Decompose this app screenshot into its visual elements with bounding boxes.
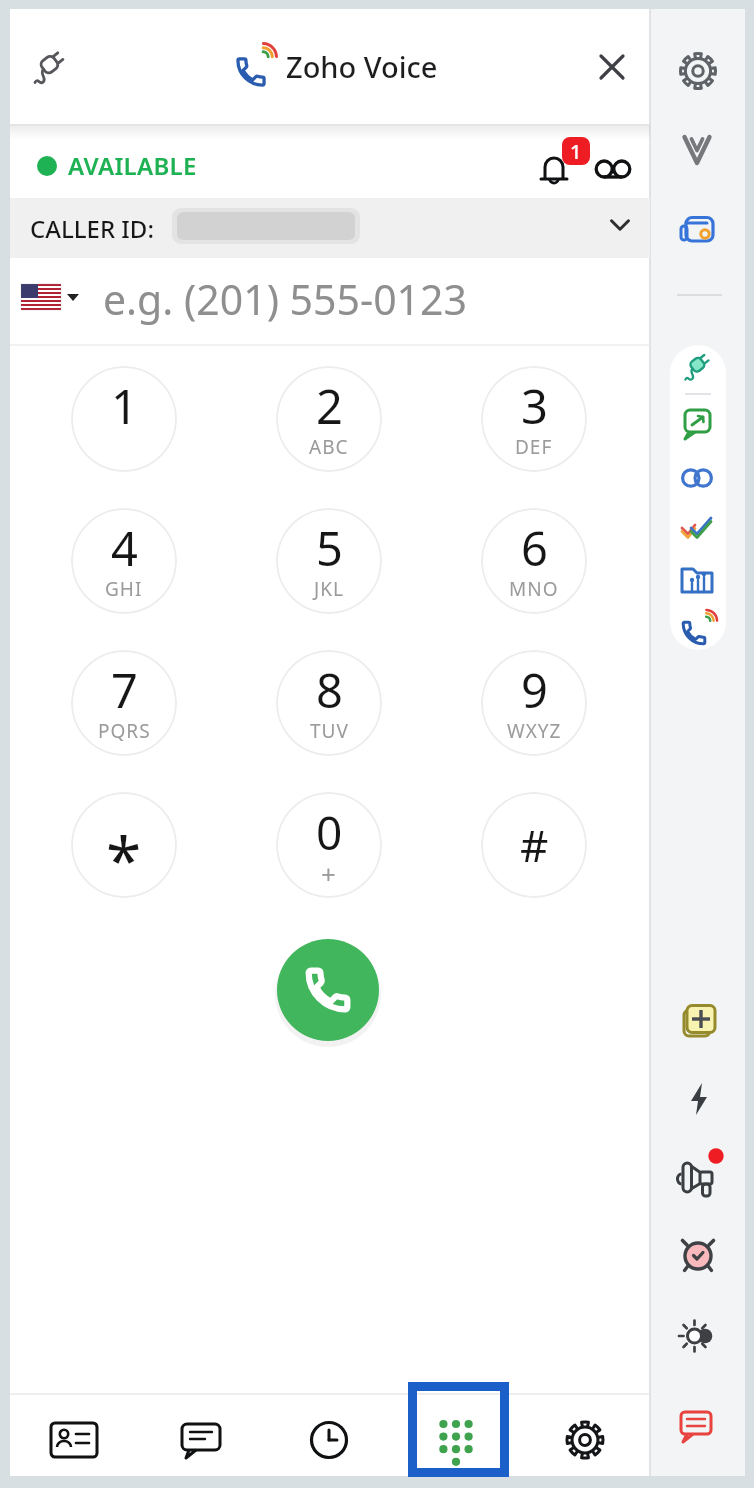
button[interactable] bbox=[10, 198, 650, 258]
button[interactable] bbox=[529, 145, 579, 195]
button[interactable]: 9 bbox=[481, 650, 587, 756]
button[interactable] bbox=[15, 270, 101, 326]
button[interactable]: 0 bbox=[276, 792, 382, 898]
button[interactable]: 3 bbox=[481, 366, 587, 472]
button[interactable] bbox=[677, 995, 725, 1043]
button[interactable] bbox=[675, 1075, 723, 1123]
staticText: 1 bbox=[570, 138, 582, 165]
staticText: 5 bbox=[316, 516, 343, 580]
button[interactable] bbox=[673, 557, 721, 605]
button[interactable] bbox=[588, 144, 638, 194]
button[interactable]: 1 bbox=[71, 366, 177, 472]
button[interactable] bbox=[674, 205, 722, 253]
staticText: GHI bbox=[105, 576, 143, 602]
button[interactable] bbox=[674, 1153, 722, 1201]
staticText: 1 bbox=[111, 374, 138, 438]
staticText: CALLER ID: bbox=[30, 212, 154, 245]
button[interactable] bbox=[672, 1401, 720, 1449]
button[interactable]: 2 bbox=[276, 366, 382, 472]
staticText: 9 bbox=[521, 658, 548, 722]
button[interactable]: 5 bbox=[276, 508, 382, 614]
staticText: 8 bbox=[316, 658, 343, 722]
staticText: e.g. (201) 555-0123 bbox=[103, 271, 467, 327]
button[interactable]: 4 bbox=[71, 508, 177, 614]
button[interactable] bbox=[550, 1405, 620, 1475]
button[interactable] bbox=[408, 1382, 509, 1477]
button[interactable] bbox=[39, 1405, 109, 1475]
staticText: 0 bbox=[316, 801, 343, 864]
staticText: + bbox=[321, 856, 337, 891]
button[interactable]: * bbox=[71, 792, 177, 898]
button[interactable] bbox=[674, 1312, 722, 1360]
staticText: 6 bbox=[521, 516, 548, 580]
staticText: 7 bbox=[111, 658, 138, 722]
staticText: 4 bbox=[111, 516, 138, 580]
staticText: 2 bbox=[316, 374, 343, 438]
button[interactable] bbox=[673, 126, 721, 174]
staticText: Zoho Voice bbox=[286, 47, 438, 86]
staticText: DEF bbox=[515, 434, 553, 460]
button[interactable] bbox=[674, 47, 722, 95]
staticText: AVAILABLE bbox=[68, 149, 197, 182]
button[interactable] bbox=[166, 1405, 236, 1475]
staticText: TUV bbox=[310, 718, 349, 744]
button[interactable] bbox=[673, 605, 721, 653]
button[interactable] bbox=[673, 399, 721, 447]
button[interactable]: # bbox=[481, 792, 587, 898]
staticText: JKL bbox=[314, 576, 344, 602]
staticText: WXYZ bbox=[507, 718, 562, 744]
button[interactable] bbox=[587, 42, 637, 92]
button[interactable] bbox=[673, 341, 721, 389]
button[interactable]: 6 bbox=[481, 508, 587, 614]
staticText: * bbox=[106, 816, 142, 898]
staticText: ABC bbox=[309, 434, 349, 460]
button[interactable] bbox=[24, 40, 74, 90]
staticText: 3 bbox=[521, 374, 548, 438]
button[interactable]: 7 bbox=[71, 650, 177, 756]
staticText: # bbox=[520, 815, 549, 875]
button[interactable] bbox=[674, 1232, 722, 1280]
button[interactable]: 8 bbox=[276, 650, 382, 756]
button[interactable] bbox=[673, 454, 721, 502]
button[interactable] bbox=[672, 503, 720, 551]
staticText: MNO bbox=[509, 576, 559, 602]
staticText: PQRS bbox=[98, 718, 151, 744]
button[interactable] bbox=[294, 1405, 364, 1475]
button[interactable] bbox=[277, 939, 379, 1041]
